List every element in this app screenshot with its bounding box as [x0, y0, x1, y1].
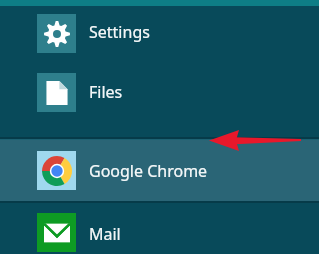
other: Annotation arrow: [0, 0, 319, 254]
staticText: Mail: [89, 223, 121, 245]
button[interactable]: Files: [0, 62, 319, 122]
button[interactable]: Settings: [0, 0, 319, 60]
staticText: Files: [89, 81, 123, 103]
staticText: Google Chrome: [89, 160, 208, 182]
button[interactable]: Mail: [0, 207, 319, 254]
button[interactable]: Google Chrome: [0, 140, 319, 201]
staticText: Settings: [89, 21, 150, 43]
